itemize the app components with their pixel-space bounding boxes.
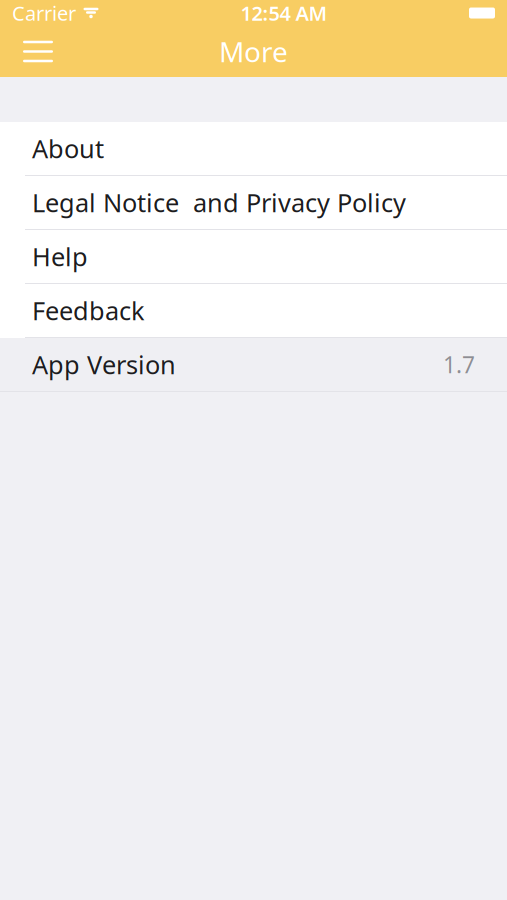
staticText: About [32,132,104,165]
staticText: Legal Notice and Privacy Policy [32,186,406,219]
button[interactable]: About [0,122,507,176]
button[interactable]: Help [0,230,507,284]
button[interactable]: Feedback [0,284,507,338]
button[interactable]: App Version [0,338,507,392]
staticText: Help [32,240,88,273]
staticText: Carrier [12,0,76,26]
staticText: App Version [32,348,176,381]
staticText: 1.7 [443,349,475,379]
button[interactable]: Legal Notice and Privacy Policy [0,176,507,230]
staticText: Feedback [32,294,145,327]
staticText: 12:54 AM [240,0,327,26]
button[interactable]: Menu [13,29,63,73]
staticText: More [219,33,288,70]
